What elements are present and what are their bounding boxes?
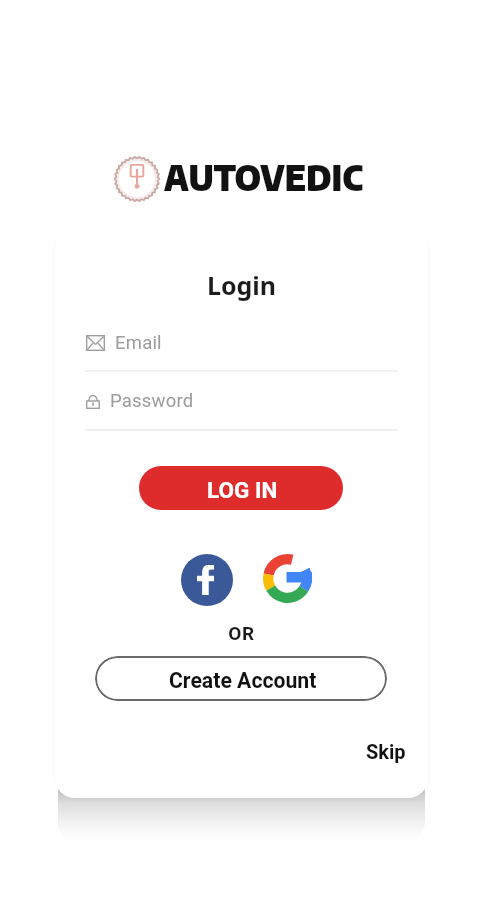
staticText: Skip	[366, 740, 406, 763]
staticText: AUTOVEDIC	[164, 155, 364, 199]
staticText: Login	[55, 268, 428, 302]
button[interactable]: LOG IN	[139, 466, 343, 510]
staticText: Email	[115, 332, 162, 354]
button[interactable]: Create Account	[95, 656, 387, 701]
button[interactable]: Sign in with Google	[263, 554, 312, 603]
staticText: OR	[55, 622, 428, 644]
button[interactable]: Skip	[366, 740, 406, 763]
button[interactable]: Sign in with Facebook	[181, 554, 233, 606]
staticText: Password	[110, 390, 194, 412]
staticText: LOG IN	[207, 477, 278, 503]
staticText: Create Account	[169, 668, 317, 693]
